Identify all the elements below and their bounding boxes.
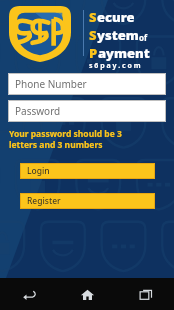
button[interactable]: Register [20,193,155,209]
button[interactable]: Login [20,163,155,179]
button[interactable]: Back [0,278,58,310]
staticText: Phone Number [15,77,87,91]
staticText: S [89,26,97,44]
staticText: Login [27,165,50,177]
staticText: s 6 p a y . c o m [89,61,141,71]
staticText: Password [15,104,61,118]
staticText: Your password should be 3 letters and 3 … [9,128,152,150]
staticText: S [89,8,97,26]
button[interactable]: Home [58,278,116,310]
staticText: ayment [98,44,150,62]
staticText: ystem [97,26,139,44]
button[interactable]: Password [8,100,166,122]
staticText: P [89,44,98,62]
staticText: of [139,32,148,43]
button[interactable]: Recent apps [116,278,174,310]
staticText: Register [27,195,61,207]
button[interactable]: Phone Number [8,73,166,95]
staticText: ecure [97,8,135,26]
